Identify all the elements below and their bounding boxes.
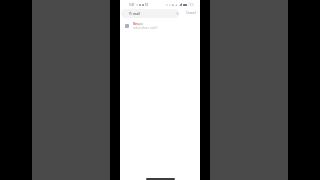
other: Clear search (176, 12, 179, 15)
staticText: subscribers and f (133, 26, 158, 30)
button[interactable]: Res (120, 20, 200, 30)
button[interactable]: Cancel (184, 10, 198, 16)
staticText: Res (133, 22, 139, 26)
staticText: Cancel (186, 11, 196, 15)
staticText: 75% (188, 3, 194, 6)
staticText: mail (133, 11, 140, 16)
button[interactable]: mail (121, 9, 179, 18)
staticText: 9:41 (129, 3, 135, 6)
staticText: pa (139, 22, 143, 26)
